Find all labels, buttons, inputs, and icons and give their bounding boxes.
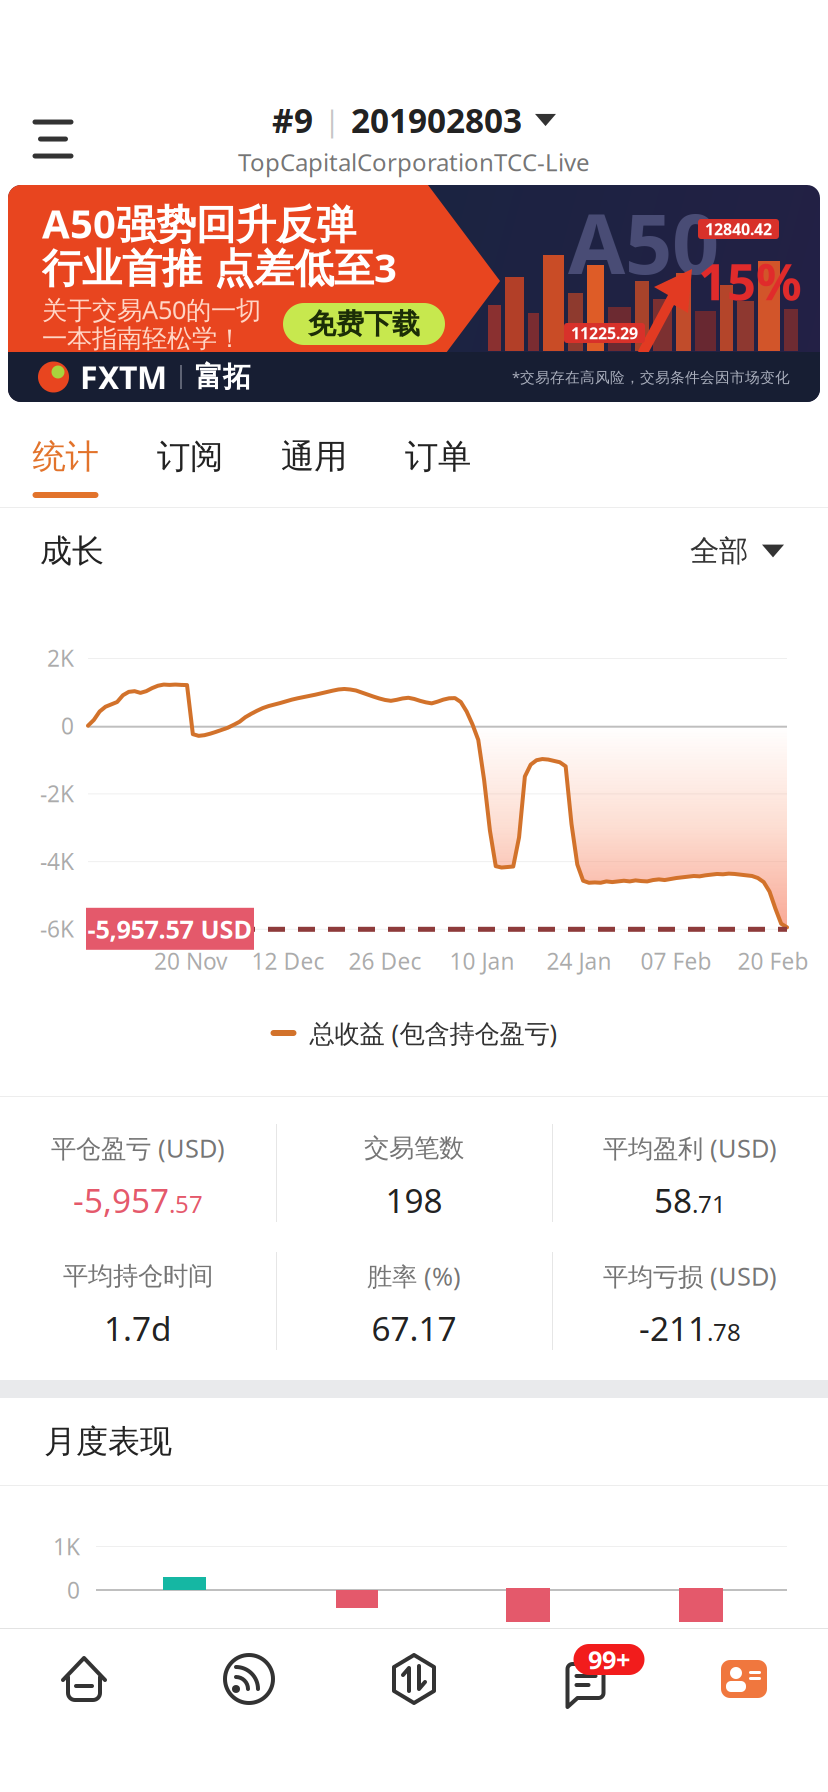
- staticText: 26 Dec: [348, 946, 421, 976]
- button[interactable]: 统计: [3, 402, 128, 507]
- staticText: 订单: [405, 436, 471, 477]
- staticText: |: [324, 100, 340, 139]
- button[interactable]: 通用: [252, 402, 376, 507]
- staticText: 20 Nov: [154, 946, 228, 976]
- staticText: 成长: [40, 531, 104, 571]
- staticText: 富拓: [195, 360, 251, 394]
- staticText: 统计: [32, 436, 98, 477]
- staticText: .71: [692, 1188, 726, 1220]
- staticText: #9: [272, 98, 313, 142]
- staticText: 月度表现: [44, 1422, 172, 1461]
- staticText: 24 Jan: [546, 946, 611, 976]
- staticText: 07 Feb: [640, 946, 711, 976]
- button[interactable]: 订阅: [128, 402, 252, 507]
- staticText: -6K: [40, 914, 74, 944]
- staticText: 平均亏损 (USD): [603, 1259, 777, 1293]
- button[interactable]: 全部: [690, 515, 784, 587]
- staticText: 1K: [53, 1531, 80, 1561]
- staticText: -211: [639, 1306, 707, 1350]
- staticText: 0: [67, 1575, 80, 1605]
- staticText: 10 Jan: [449, 946, 514, 976]
- staticText: -5,957: [73, 1178, 169, 1222]
- staticText: 全部: [690, 533, 748, 569]
- staticText: 行业首推 点差低至3: [42, 240, 397, 293]
- staticText: 平均持仓时间: [63, 1260, 213, 1291]
- staticText: 总收益 (包含持仓盈亏): [309, 1016, 557, 1050]
- staticText: 交易笔数: [364, 1132, 464, 1163]
- button[interactable]: Quotes: [1, 1629, 166, 1729]
- staticText: 20 Feb: [737, 946, 808, 976]
- staticText: .78: [707, 1316, 741, 1348]
- staticText: 201902803: [351, 98, 522, 142]
- staticText: 免费下载: [308, 307, 420, 341]
- button[interactable]: 订单: [376, 402, 500, 507]
- staticText: -5,957.57 USD: [87, 912, 252, 946]
- staticText: FXTM: [80, 356, 167, 398]
- button[interactable]: Signals: [166, 1629, 331, 1729]
- staticText: 通用: [281, 436, 347, 477]
- button[interactable]: Trade: [331, 1629, 496, 1729]
- staticText: 关于交易A50的一切: [42, 293, 261, 326]
- staticText: 67.17: [371, 1306, 456, 1350]
- staticText: 15%: [698, 247, 802, 314]
- staticText: 12840.42: [705, 218, 772, 240]
- staticText: 11225.29: [571, 322, 638, 344]
- staticText: 订阅: [157, 436, 223, 477]
- staticText: 一本指南轻松学！: [42, 323, 242, 354]
- staticText: 平均盈利 (USD): [603, 1131, 777, 1165]
- staticText: .57: [169, 1188, 203, 1220]
- staticText: *交易存在高风险，交易条件会因市场变化: [512, 367, 790, 387]
- staticText: A50强势回升反弹: [42, 196, 356, 250]
- staticText: 198: [385, 1178, 442, 1222]
- staticText: 99+: [588, 1643, 630, 1676]
- staticText: 12 Dec: [251, 946, 324, 976]
- button[interactable]: FXTM A50 promotion: [8, 185, 820, 402]
- button[interactable]: Messages, 99 plus unread: [496, 1629, 661, 1729]
- staticText: A50: [568, 187, 719, 297]
- staticText: 2K: [47, 643, 74, 673]
- staticText: 58: [654, 1178, 692, 1222]
- button[interactable]: Menu: [7, 93, 99, 185]
- staticText: 平仓盈亏 (USD): [51, 1131, 225, 1165]
- staticText: -2K: [40, 778, 74, 808]
- staticText: TopCapitalCorporationTCC-Live: [238, 146, 590, 178]
- button[interactable]: Accounts: [661, 1629, 826, 1729]
- staticText: 0: [61, 711, 74, 741]
- staticText: -4K: [40, 846, 74, 876]
- staticText: 1.7d: [104, 1306, 172, 1350]
- staticText: 胜率 (%): [367, 1259, 461, 1293]
